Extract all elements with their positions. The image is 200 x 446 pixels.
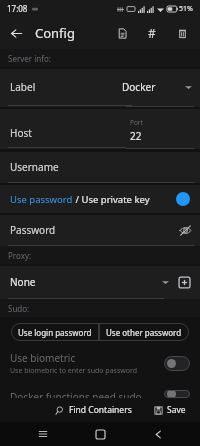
button[interactable]: Docker <box>122 69 200 105</box>
button[interactable]: Toggle <box>164 356 190 371</box>
button[interactable]: Add proxy <box>177 275 191 289</box>
staticText: Use biometric <box>10 351 76 365</box>
staticText: Proxy: <box>8 250 32 261</box>
staticText: Password <box>10 223 56 237</box>
staticText: Save <box>167 404 186 416</box>
button[interactable]: File <box>107 18 137 48</box>
button[interactable]: Use login password <box>11 323 99 341</box>
staticText: None <box>10 275 36 289</box>
button[interactable]: Use other password <box>99 323 189 341</box>
staticText: Label <box>10 80 36 94</box>
button[interactable]: Recent apps <box>28 422 58 446</box>
other: Toggle auth method <box>176 192 190 206</box>
staticText: 17:08 <box>7 3 28 14</box>
button[interactable]: Use biometric <box>0 349 200 380</box>
button[interactable]: Delete <box>167 18 197 48</box>
button[interactable]: Back <box>143 422 173 446</box>
staticText: Config <box>35 24 75 42</box>
button[interactable]: Host <box>0 109 126 147</box>
staticText: Sudo: <box>8 303 30 314</box>
staticText: Username <box>10 160 59 174</box>
button[interactable]: Find Containers <box>50 401 138 419</box>
staticText: Docker <box>122 80 156 94</box>
button[interactable]: Show password <box>178 223 192 237</box>
button[interactable]: Toggle <box>164 390 190 398</box>
staticText: 22 <box>130 129 142 143</box>
button[interactable]: Label <box>10 69 116 105</box>
staticText: # <box>148 25 156 41</box>
button[interactable]: Tags <box>137 18 167 48</box>
staticText: Server info: <box>8 53 51 64</box>
staticText: Use password <box>10 193 73 206</box>
button[interactable]: Save <box>148 401 192 419</box>
staticText: Use login password <box>18 327 92 338</box>
button[interactable]: Port <box>126 109 200 147</box>
button[interactable]: None <box>0 266 177 298</box>
button[interactable]: Home <box>85 422 115 446</box>
button[interactable]: Back <box>0 17 32 49</box>
staticText: Find Containers <box>69 404 132 416</box>
staticText: 51% <box>179 4 193 14</box>
button[interactable]: Docker functions need sudo <box>0 390 200 398</box>
staticText: Use biomebric to enter sudo password <box>10 366 138 376</box>
button[interactable]: Password <box>0 215 200 245</box>
staticText: Port <box>130 118 143 127</box>
staticText: Host <box>10 126 32 140</box>
staticText: Use other password <box>106 327 182 338</box>
staticText: / Use private key <box>73 193 150 206</box>
staticText: Docker functions need sudo <box>10 390 164 398</box>
button[interactable]: Username <box>0 152 200 182</box>
button[interactable]: Use password <box>0 185 200 213</box>
